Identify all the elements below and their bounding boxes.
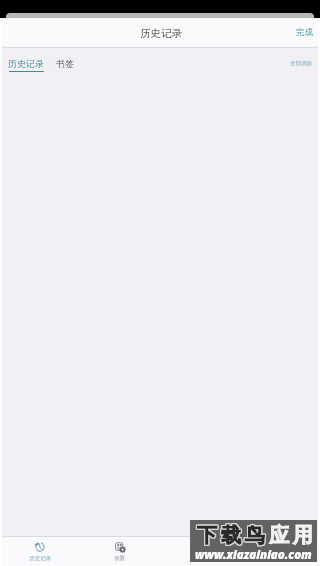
button[interactable]: 历史记录 [8, 58, 44, 72]
staticText: 下载鸟 [196, 523, 268, 548]
button[interactable]: History [0, 537, 80, 566]
staticText: 设置 [114, 555, 126, 562]
staticText: 书签 [56, 58, 74, 69]
staticText: 下载鸟 [196, 522, 268, 547]
staticText: 下载鸟 [197, 523, 269, 548]
staticText: 下载鸟 [196, 524, 268, 549]
staticText: 应用 [269, 523, 317, 548]
staticText: 下载鸟 [197, 522, 269, 547]
button[interactable]: 完成 [296, 27, 313, 38]
other: History [35, 542, 45, 552]
staticText: 历史记录 [29, 555, 52, 562]
staticText: 下载鸟 [198, 524, 270, 549]
other: Settings [115, 542, 125, 552]
staticText: 历史记录 [140, 27, 182, 40]
staticText: 完成 [296, 27, 313, 38]
staticText: 历史记录 [8, 58, 44, 69]
staticText: 下载鸟 [197, 524, 269, 549]
button[interactable]: Settings [80, 537, 160, 566]
staticText: 下载鸟 [198, 522, 270, 547]
staticText: 下载鸟 [198, 523, 270, 548]
button[interactable]: 全部清除 [290, 60, 312, 67]
staticText: www.xiazainiao.com [195, 547, 312, 563]
staticText: 全部清除 [290, 60, 312, 67]
button[interactable]: 书签 [56, 58, 74, 69]
